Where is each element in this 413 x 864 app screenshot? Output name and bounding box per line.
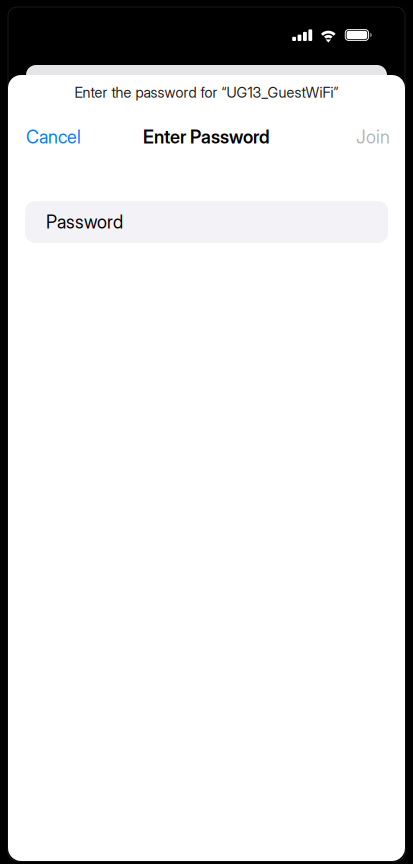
button[interactable]: Cancel [8,110,96,164]
staticText: Password [46,211,123,233]
staticText: Cancel [26,126,81,148]
staticText: Join [356,126,390,148]
staticText: Enter Password [143,126,270,148]
staticText: Enter the password for “UG13_GuestWiFi” [74,84,338,101]
button[interactable]: Join [344,110,405,164]
button[interactable]: Password [25,201,388,243]
